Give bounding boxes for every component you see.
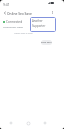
staticText: Pitch Pack xyxy=(41,41,52,44)
staticText: Connected xyxy=(6,20,23,24)
button[interactable]: Pitch Pack xyxy=(41,40,52,45)
button[interactable]: Back xyxy=(7,119,15,127)
button[interactable]: Recent apps xyxy=(41,119,49,127)
button[interactable]: Connected xyxy=(3,20,29,28)
button[interactable]: Another xyxy=(32,19,43,23)
button[interactable]: Supporter xyxy=(32,24,46,28)
staticText: Community Video xyxy=(3,25,24,28)
button[interactable]: More options xyxy=(49,9,56,16)
staticText: Never miss a note xyxy=(14,32,33,35)
staticText: Online Sex Save xyxy=(7,11,32,15)
staticText: 9:41 xyxy=(3,2,10,7)
button[interactable]: Home xyxy=(24,119,32,127)
button[interactable]: Back xyxy=(1,9,8,16)
